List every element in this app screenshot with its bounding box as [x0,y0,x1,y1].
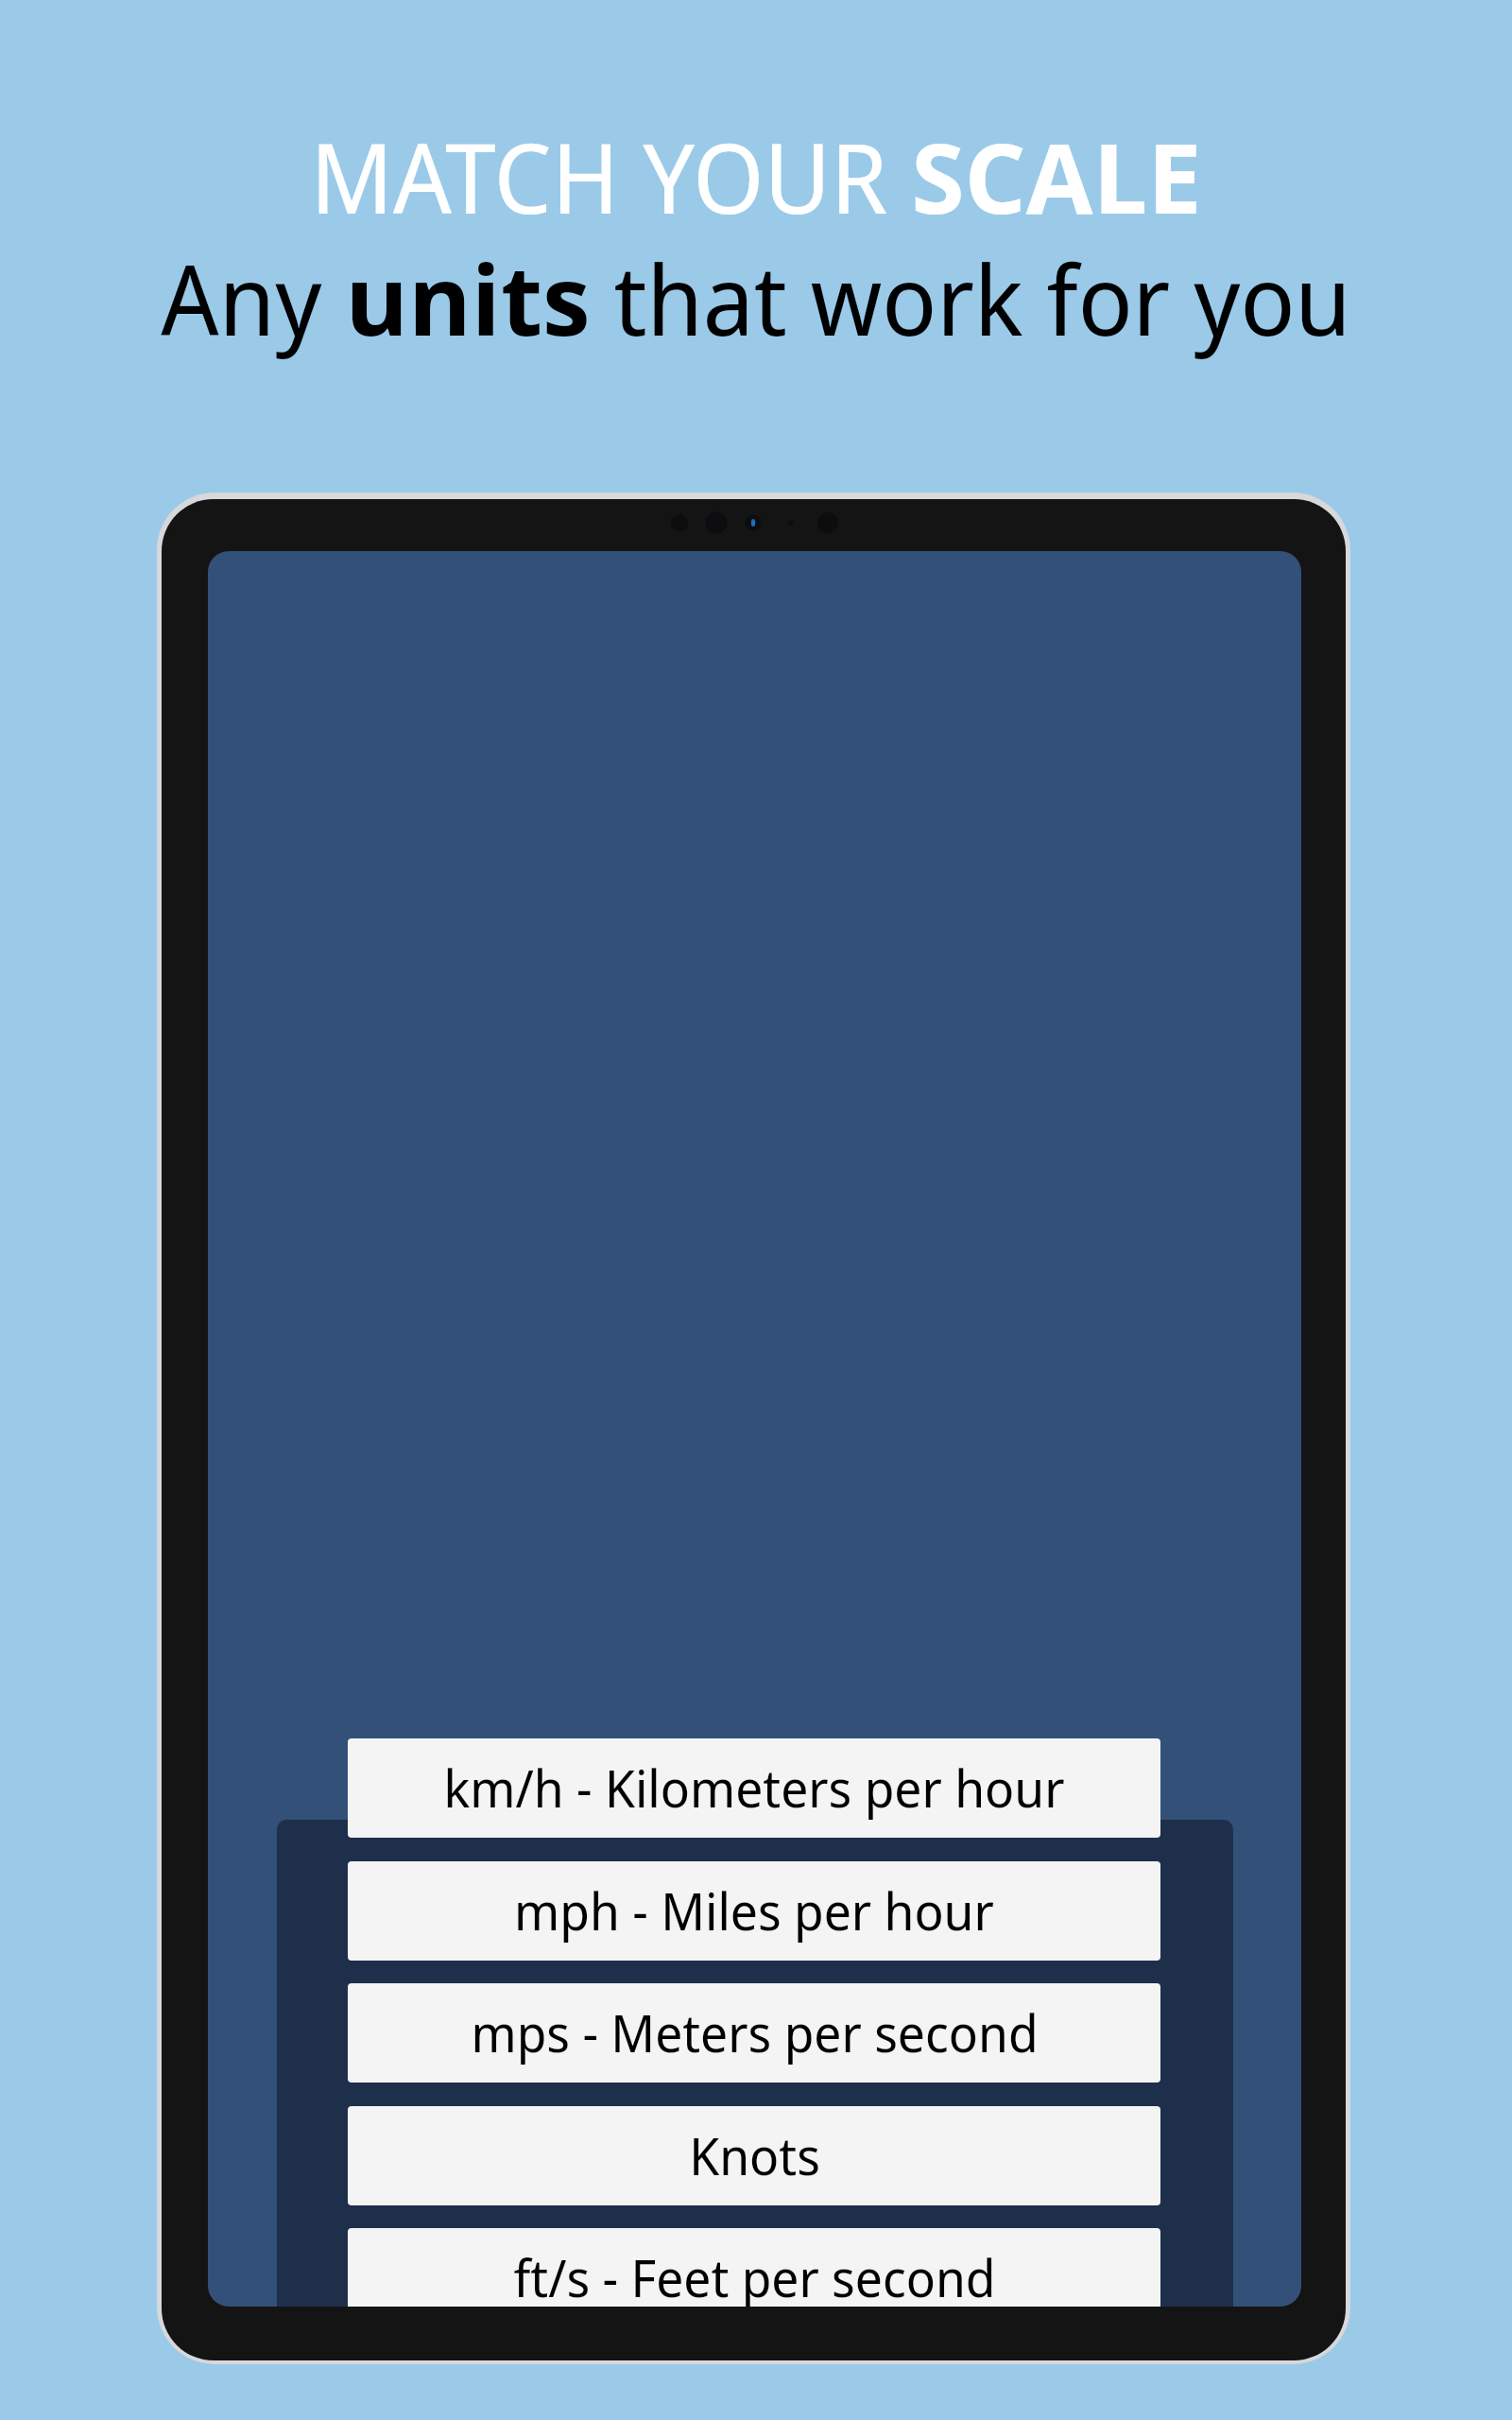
button[interactable]: mph - Miles per hour [348,1861,1160,1961]
button[interactable]: Knots [348,2106,1160,2205]
staticText: km/h - Kilometers per hour [443,1753,1065,1824]
other: Front camera [648,502,875,559]
staticText: Knots [689,2120,820,2191]
staticText: mps - Meters per second [471,1997,1039,2068]
button[interactable]: ft/s - Feet per second [348,2228,1160,2307]
staticText: Any units that work for you [0,233,1512,364]
staticText: ft/s - Feet per second [513,2242,996,2307]
button[interactable]: mps - Meters per second [348,1983,1160,2083]
staticText: MATCH YOUR SCALE [0,111,1512,242]
button[interactable]: km/h - Kilometers per hour [348,1738,1160,1838]
staticText: mph - Miles per hour [514,1875,994,1946]
